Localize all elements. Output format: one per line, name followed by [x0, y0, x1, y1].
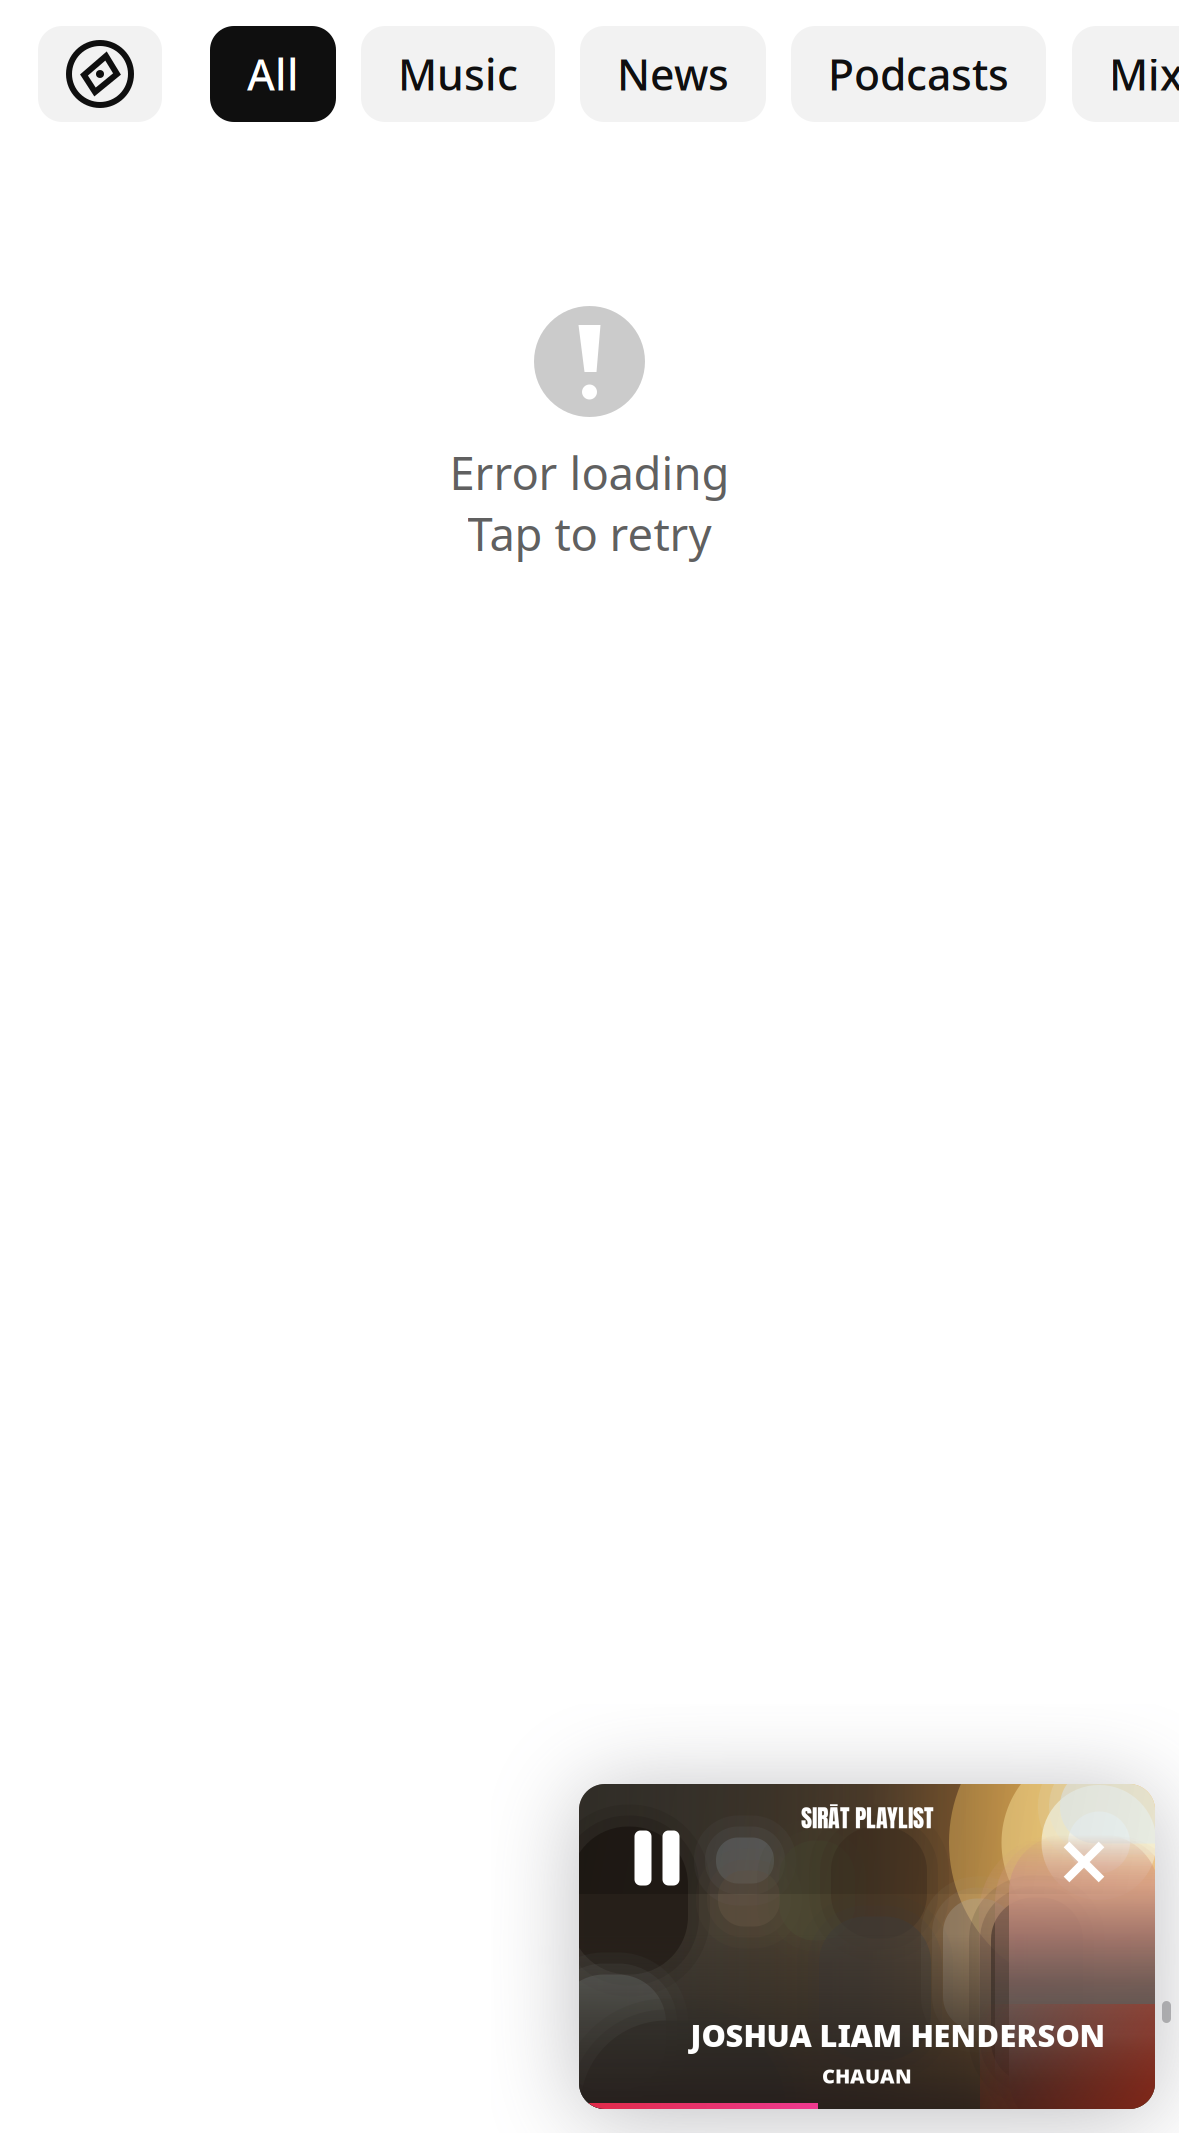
- button[interactable]: Close: [1036, 1814, 1132, 1910]
- staticText: Mixes: [1109, 46, 1179, 102]
- button[interactable]: Explore: [38, 26, 162, 122]
- staticText: CHAUAN: [822, 2062, 912, 2089]
- button[interactable]: All: [210, 26, 336, 122]
- staticText: JOSHUA LIAM HENDERSON: [690, 2015, 1105, 2055]
- staticText: Error loading: [449, 442, 729, 503]
- button[interactable]: Mixes: [1072, 26, 1179, 122]
- staticText: All: [247, 46, 299, 102]
- staticText: News: [617, 46, 729, 102]
- button[interactable]: Pause: [607, 1808, 707, 1908]
- staticText: Podcasts: [828, 46, 1009, 102]
- staticText: Music: [398, 46, 518, 102]
- button[interactable]: Error loading: [449, 306, 729, 564]
- button[interactable]: Podcasts: [791, 26, 1046, 122]
- button[interactable]: News: [580, 26, 766, 122]
- staticText: Tap to retry: [467, 503, 711, 564]
- staticText: SIRĀT PLAYLIST: [801, 1800, 933, 1836]
- button[interactable]: Music: [361, 26, 555, 122]
